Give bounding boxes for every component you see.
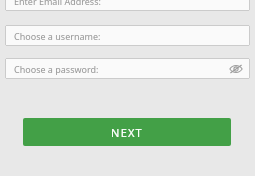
button[interactable]: Show password	[228, 61, 244, 77]
button[interactable]: NEXT	[23, 118, 231, 146]
staticText: Choose a password:	[14, 63, 99, 75]
staticText: NEXT	[111, 125, 143, 140]
button[interactable]: Enter Email Address:	[5, 0, 250, 11]
staticText: Choose a username:	[14, 30, 101, 42]
button[interactable]: Choose a password:	[5, 58, 250, 79]
button[interactable]: Choose a username:	[5, 25, 250, 46]
staticText: Enter Email Address:	[14, 0, 101, 7]
